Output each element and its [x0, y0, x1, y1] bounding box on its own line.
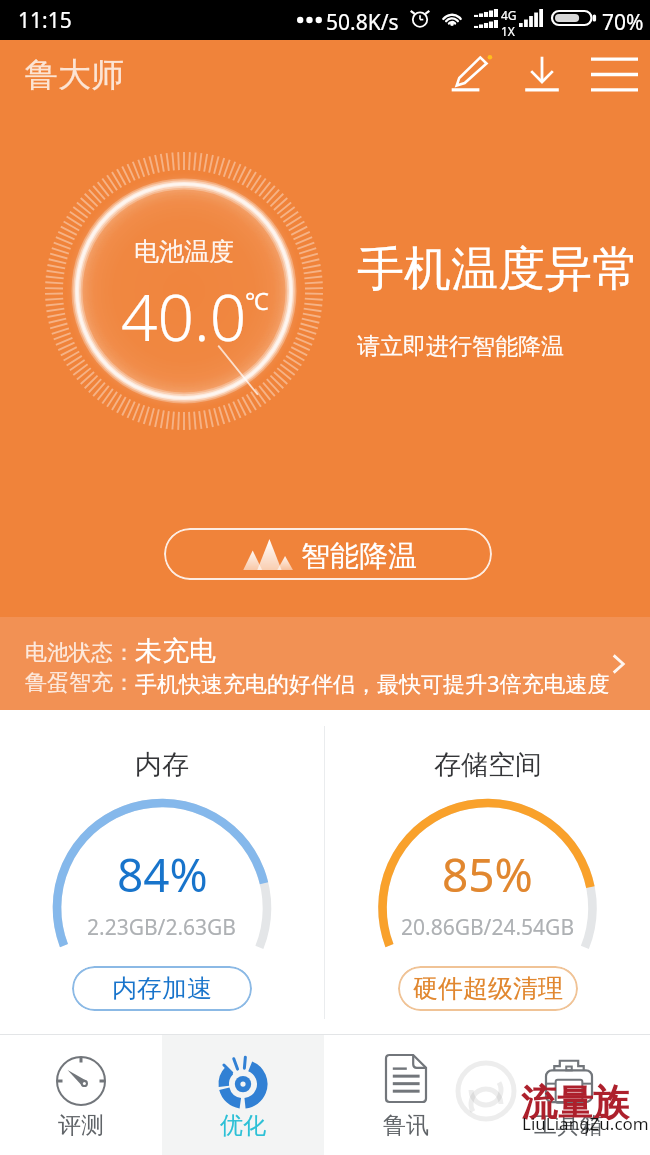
- button[interactable]: Menu: [582, 42, 646, 106]
- staticText: 电池温度: [134, 236, 234, 267]
- staticText: 鲁蛋智充：: [25, 669, 135, 697]
- staticText: 40.0: [121, 273, 247, 360]
- staticText: 流量族: [521, 1080, 629, 1125]
- staticText: 存储空间: [434, 748, 542, 782]
- staticText: 50.8K/s: [326, 8, 399, 37]
- staticText: 请立即进行智能降温: [357, 332, 564, 361]
- staticText: 优化: [220, 1111, 266, 1140]
- staticText: 鲁讯: [383, 1111, 429, 1140]
- staticText: 11:15: [18, 6, 72, 35]
- staticText: 70%: [602, 8, 644, 37]
- staticText: 手机温度异常: [357, 240, 639, 299]
- button[interactable]: 优化: [162, 1035, 324, 1155]
- button[interactable]: 内存加速: [72, 966, 252, 1011]
- staticText: 内存: [135, 748, 189, 782]
- staticText: 硬件超级清理: [413, 973, 563, 1004]
- staticText: 智能降温: [301, 538, 417, 575]
- staticText: 20.86GB/24.54GB: [401, 913, 575, 942]
- staticText: 鲁大师: [25, 54, 124, 96]
- staticText: LiuLiangZu.com: [522, 1112, 649, 1135]
- button[interactable]: 工具箱: [487, 1035, 650, 1155]
- button[interactable]: Edit: [439, 42, 503, 106]
- button[interactable]: 智能降温: [164, 528, 492, 580]
- staticText: ℃: [245, 284, 269, 317]
- staticText: 84%: [117, 843, 208, 906]
- staticText: 85%: [442, 843, 533, 906]
- staticText: 1X: [501, 23, 515, 39]
- staticText: 2.23GB/2.63GB: [87, 913, 237, 942]
- staticText: 电池状态：: [25, 639, 135, 667]
- button[interactable]: 评测: [0, 1035, 162, 1155]
- button[interactable]: 硬件超级清理: [398, 966, 578, 1011]
- button[interactable]: Download: [510, 42, 574, 106]
- button[interactable]: 鲁讯: [324, 1035, 487, 1155]
- staticText: 内存加速: [112, 973, 212, 1004]
- staticText: 手机快速充电的好伴侣，最快可提升3倍充电速度: [135, 668, 610, 698]
- staticText: 评测: [58, 1111, 104, 1140]
- button[interactable]: 电池状态：: [0, 617, 650, 710]
- staticText: 4G: [501, 7, 517, 23]
- staticText: 未充电: [135, 634, 216, 668]
- staticText: 工具箱: [534, 1111, 603, 1140]
